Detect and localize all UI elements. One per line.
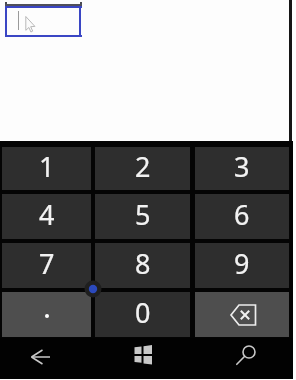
button[interactable] — [5, 4, 82, 37]
button[interactable]: 1 — [2, 147, 91, 190]
staticText: 1 — [39, 148, 55, 185]
button[interactable]: 6 — [195, 194, 289, 239]
staticText: 6 — [234, 196, 250, 233]
staticText: 5 — [135, 196, 151, 233]
staticText: 2 — [135, 148, 151, 185]
button[interactable]: 7 — [2, 243, 91, 288]
staticText: 4 — [39, 196, 55, 233]
button[interactable] — [195, 292, 289, 337]
button[interactable] — [22, 342, 60, 372]
button[interactable]: 8 — [95, 243, 190, 288]
staticText: 7 — [39, 245, 55, 282]
staticText: 0 — [135, 294, 151, 331]
button[interactable] — [130, 341, 158, 369]
button[interactable]: 0 — [95, 292, 190, 337]
button[interactable]: 9 — [195, 243, 289, 288]
button[interactable]: 3 — [195, 147, 289, 190]
button[interactable]: 5 — [95, 194, 190, 239]
button[interactable]: 4 — [2, 194, 91, 239]
button[interactable] — [2, 292, 91, 337]
button[interactable]: 2 — [95, 147, 190, 190]
staticText: 8 — [135, 245, 151, 282]
button[interactable] — [232, 340, 266, 370]
staticText: 3 — [234, 148, 250, 185]
staticText: 9 — [234, 245, 250, 282]
